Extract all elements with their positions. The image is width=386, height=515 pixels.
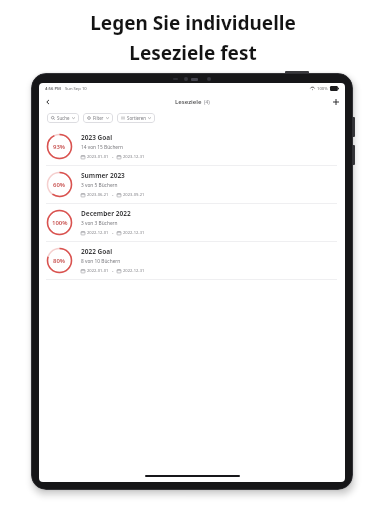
staticText: 93% [53, 143, 66, 151]
staticText: Sortieren [127, 115, 146, 121]
staticText: 60% [53, 181, 66, 189]
staticText: 2022-01-01 [87, 268, 109, 274]
staticText: 2022-12-31 [123, 268, 145, 274]
staticText: Filter [93, 115, 104, 121]
button[interactable]: Ziel hinzufügen [330, 96, 342, 108]
button[interactable]: Zurück [42, 96, 54, 108]
staticText: Summer 2023 [81, 171, 125, 180]
button[interactable]: 60% [39, 166, 345, 203]
staticText: 2023-09-21 [123, 192, 145, 198]
staticText: December 2022 [81, 209, 131, 218]
staticText: Leseziele [175, 98, 202, 106]
staticText: Leseziele fest [129, 40, 257, 66]
staticText: 2023-12-31 [123, 154, 145, 160]
staticText: - [112, 230, 114, 236]
staticText: 100% [317, 86, 328, 92]
button[interactable]: Filter [83, 113, 113, 123]
staticText: 2022-12-01 [87, 230, 109, 236]
staticText: 80% [53, 257, 66, 265]
staticText: 2023 Goal [81, 133, 113, 142]
staticText: 2022-12-31 [123, 230, 145, 236]
staticText: - [112, 192, 114, 198]
staticText: 2022 Goal [81, 247, 113, 256]
staticText: 100% [52, 219, 68, 227]
staticText: 2023-06-21 [87, 192, 109, 198]
button[interactable]: Sortieren [117, 113, 155, 123]
button[interactable]: 100% [39, 204, 345, 241]
staticText: - [112, 154, 114, 160]
button[interactable]: 80% [39, 242, 345, 279]
staticText: 4:56 PM [45, 86, 61, 92]
staticText: (4) [204, 99, 210, 106]
staticText: 2023-01-01 [87, 154, 109, 160]
staticText: Suche [57, 115, 70, 121]
staticText: 14 von 15 Büchern [81, 144, 124, 151]
staticText: 8 von 10 Büchern [81, 258, 121, 265]
staticText: - [112, 268, 114, 274]
staticText: Legen Sie individuelle [90, 10, 296, 36]
button[interactable]: 93% [39, 128, 345, 165]
staticText: 3 von 3 Büchern [81, 220, 118, 227]
staticText: Sun Sep 10 [65, 86, 87, 92]
staticText: 3 von 5 Büchern [81, 182, 118, 189]
button[interactable]: Suche [47, 113, 79, 123]
